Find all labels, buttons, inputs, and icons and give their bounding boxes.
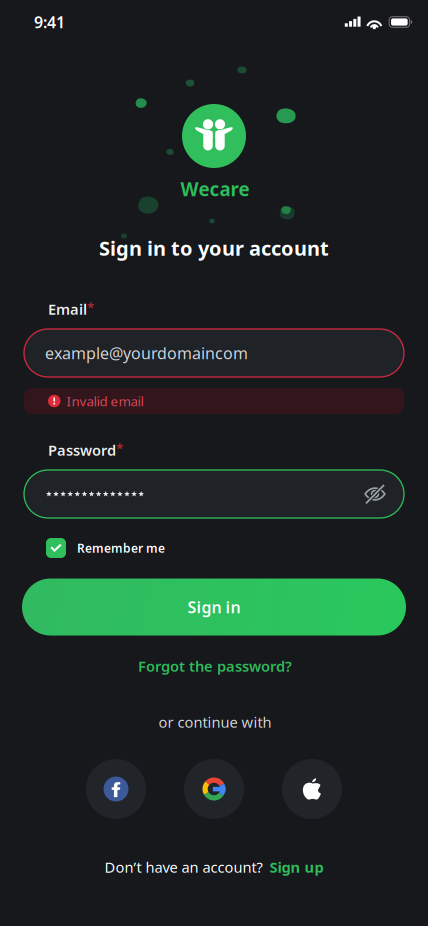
staticText: * xyxy=(87,298,94,316)
staticText: Sign in xyxy=(187,596,240,618)
staticText: example@yourdomaincom xyxy=(45,342,248,364)
staticText: * xyxy=(116,439,123,457)
button[interactable]: Forgot the password? xyxy=(115,652,315,680)
button[interactable]: Sign up xyxy=(269,857,323,877)
staticText: Remember me xyxy=(77,540,165,556)
staticText: Password xyxy=(48,440,116,460)
button[interactable]: Remember me xyxy=(0,533,428,563)
staticText: 9:41 xyxy=(34,11,65,33)
staticText: Wecare xyxy=(180,177,249,201)
staticText: Sign up xyxy=(269,857,323,877)
button[interactable]: Continue with Facebook xyxy=(86,759,146,819)
staticText: or continue with xyxy=(158,712,271,732)
staticText: Forgot the password? xyxy=(138,656,292,676)
staticText: Sign in to your account xyxy=(99,235,329,261)
button[interactable] xyxy=(24,470,404,518)
button[interactable]: Continue with Google xyxy=(184,759,244,819)
staticText: Invalid email xyxy=(66,392,143,410)
button[interactable]: Continue with Apple xyxy=(282,759,342,819)
button[interactable]: example@yourdomaincom xyxy=(24,329,404,377)
staticText: Don’t have an account? xyxy=(104,857,262,877)
staticText: Email xyxy=(48,299,87,319)
button[interactable]: Sign in xyxy=(22,578,406,635)
